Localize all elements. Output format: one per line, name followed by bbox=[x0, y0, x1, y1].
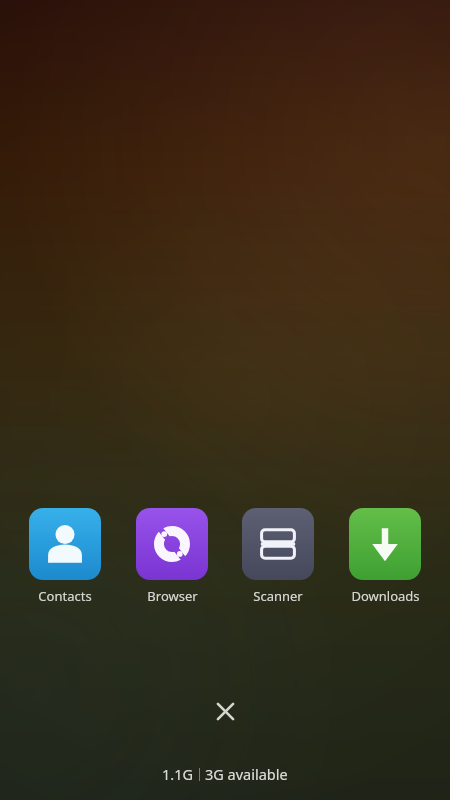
staticText: Scanner bbox=[253, 587, 303, 605]
staticText: 1.1G bbox=[162, 764, 194, 784]
staticText: Contacts bbox=[38, 587, 92, 605]
staticText: Browser bbox=[147, 587, 198, 605]
button[interactable]: Contacts bbox=[15, 508, 115, 605]
button[interactable]: Close bbox=[202, 688, 248, 734]
button[interactable]: Downloads bbox=[335, 508, 435, 605]
staticText: 3G available bbox=[205, 764, 288, 784]
staticText: Downloads bbox=[351, 587, 420, 605]
button[interactable]: Browser bbox=[122, 508, 222, 605]
button[interactable]: Scanner bbox=[228, 508, 328, 605]
